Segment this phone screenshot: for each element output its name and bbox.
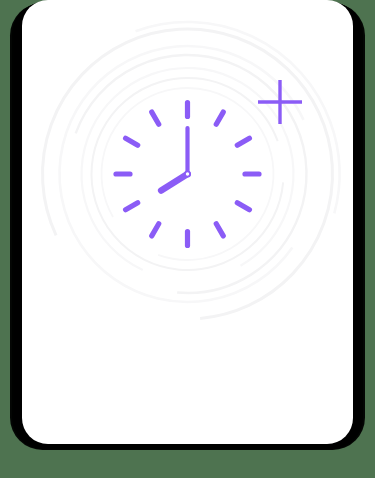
button[interactable]: Clock illustration card bbox=[0, 0, 375, 478]
